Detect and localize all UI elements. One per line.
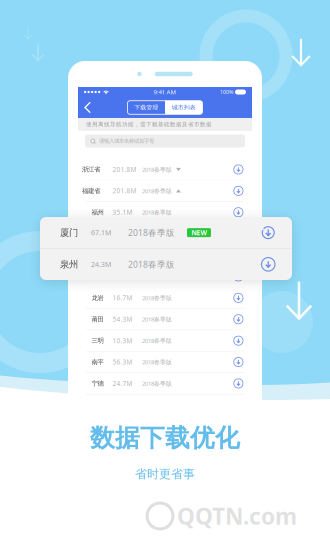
staticText: 16.7M: [112, 293, 132, 302]
staticText: 2018春季版: [142, 208, 172, 216]
staticText: 35.1M: [112, 208, 132, 217]
button[interactable]: 漳州: [78, 266, 252, 287]
button[interactable]: 下载管理: [127, 101, 165, 114]
staticText: 10.3M: [112, 336, 132, 345]
staticText: NEW: [191, 228, 206, 237]
staticText: 下载管理: [134, 104, 158, 111]
staticText: 201.8M: [112, 186, 136, 195]
staticText: 2018春季版: [142, 379, 172, 387]
button[interactable]: 浙江省: [78, 159, 252, 180]
staticText: 24.3M: [91, 260, 111, 269]
staticText: QQTN.com: [177, 501, 297, 531]
staticText: 2018春季版: [142, 337, 172, 345]
staticText: 南平: [91, 358, 103, 366]
staticText: 龙岩: [91, 294, 103, 302]
button[interactable]: 返回: [78, 97, 98, 118]
button[interactable]: 福建省: [78, 180, 252, 202]
staticText: 厦门: [60, 227, 78, 239]
button[interactable]: 泉州: [78, 245, 252, 266]
staticText: 2018春季版: [142, 294, 172, 302]
staticText: 100%: [220, 88, 233, 96]
button[interactable]: 龙岩: [78, 287, 252, 309]
staticText: 莆田: [91, 315, 103, 323]
staticText: 省时更省事: [135, 466, 195, 482]
staticText: 2018春季版: [128, 227, 175, 238]
staticText: 浙江省: [82, 165, 100, 173]
button[interactable]: 泉州: [40, 249, 292, 280]
staticText: 2018春季版: [142, 358, 172, 366]
button[interactable]: 厦门: [78, 223, 252, 245]
button[interactable]: 莆田: [78, 309, 252, 330]
staticText: 请输入城市名称或首字母: [99, 138, 154, 144]
button[interactable]: 宁德: [78, 373, 252, 394]
staticText: 宁德: [91, 379, 103, 387]
staticText: 67.1M: [91, 228, 111, 237]
button[interactable]: 福州: [78, 202, 252, 223]
staticText: 2018春季版: [142, 165, 172, 173]
staticText: 67.1M: [112, 229, 132, 238]
staticText: 福州: [91, 208, 103, 216]
staticText: 福建省: [82, 187, 100, 195]
staticText: 2018春季版: [142, 230, 172, 238]
staticText: 9:41 AM: [154, 88, 176, 96]
staticText: 24.7M: [112, 379, 132, 388]
staticText: 2018春季版: [128, 258, 175, 270]
staticText: 2018春季版: [142, 187, 172, 195]
staticText: 泉州: [60, 258, 78, 270]
button[interactable]: 三明: [78, 330, 252, 352]
staticText: 使用离线导航功能，需下载基础数据及省市数据: [86, 121, 212, 128]
button[interactable]: 厦门: [40, 217, 292, 248]
staticText: 2018春季版: [142, 315, 172, 323]
staticText: 54.3M: [112, 315, 132, 324]
button[interactable]: 城市列表: [165, 101, 202, 114]
staticText: 厦门: [91, 230, 103, 238]
staticText: 城市列表: [172, 104, 196, 111]
staticText: 三明: [91, 337, 103, 345]
staticText: 201.8M: [112, 165, 136, 174]
button[interactable]: 南平: [78, 352, 252, 373]
staticText: 56.3M: [112, 358, 132, 366]
staticText: 数据下载优化: [90, 422, 240, 453]
